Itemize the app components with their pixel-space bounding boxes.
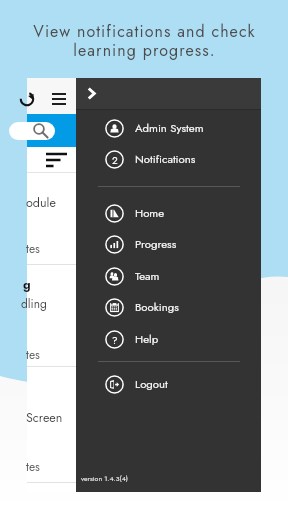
- staticText: View notifications and check learning pr…: [33, 20, 256, 62]
- staticText: Team: [135, 268, 160, 284]
- button[interactable]: 2: [76, 144, 261, 174]
- staticText: Home: [135, 205, 165, 221]
- staticText: Progress: [135, 236, 177, 252]
- button[interactable]: Admin System: [76, 113, 261, 143]
- staticText: Help: [135, 331, 159, 347]
- staticText: version 1.4.3(4): [81, 474, 128, 484]
- button[interactable]: Close navigation drawer: [78, 78, 106, 109]
- staticText: tes: [26, 458, 40, 475]
- staticText: ?: [112, 333, 118, 347]
- staticText: Screen: [26, 409, 63, 427]
- button[interactable]: Logout: [76, 369, 261, 399]
- staticText: Logout: [135, 376, 168, 392]
- button[interactable]: Progress: [76, 229, 261, 259]
- staticText: 2: [112, 153, 118, 167]
- staticText: dling: [21, 295, 47, 312]
- staticText: odule: [26, 194, 56, 212]
- staticText: Bookings: [135, 299, 179, 315]
- button[interactable]: Bookings: [76, 292, 261, 322]
- staticText: tes: [26, 346, 40, 363]
- staticText: Notifications: [135, 151, 196, 167]
- button[interactable]: Team: [76, 261, 261, 291]
- staticText: Admin System: [135, 120, 204, 136]
- staticText: tes: [26, 240, 40, 257]
- button[interactable]: Home: [76, 198, 261, 228]
- staticText: g: [23, 276, 31, 294]
- button[interactable]: ?: [76, 324, 261, 354]
